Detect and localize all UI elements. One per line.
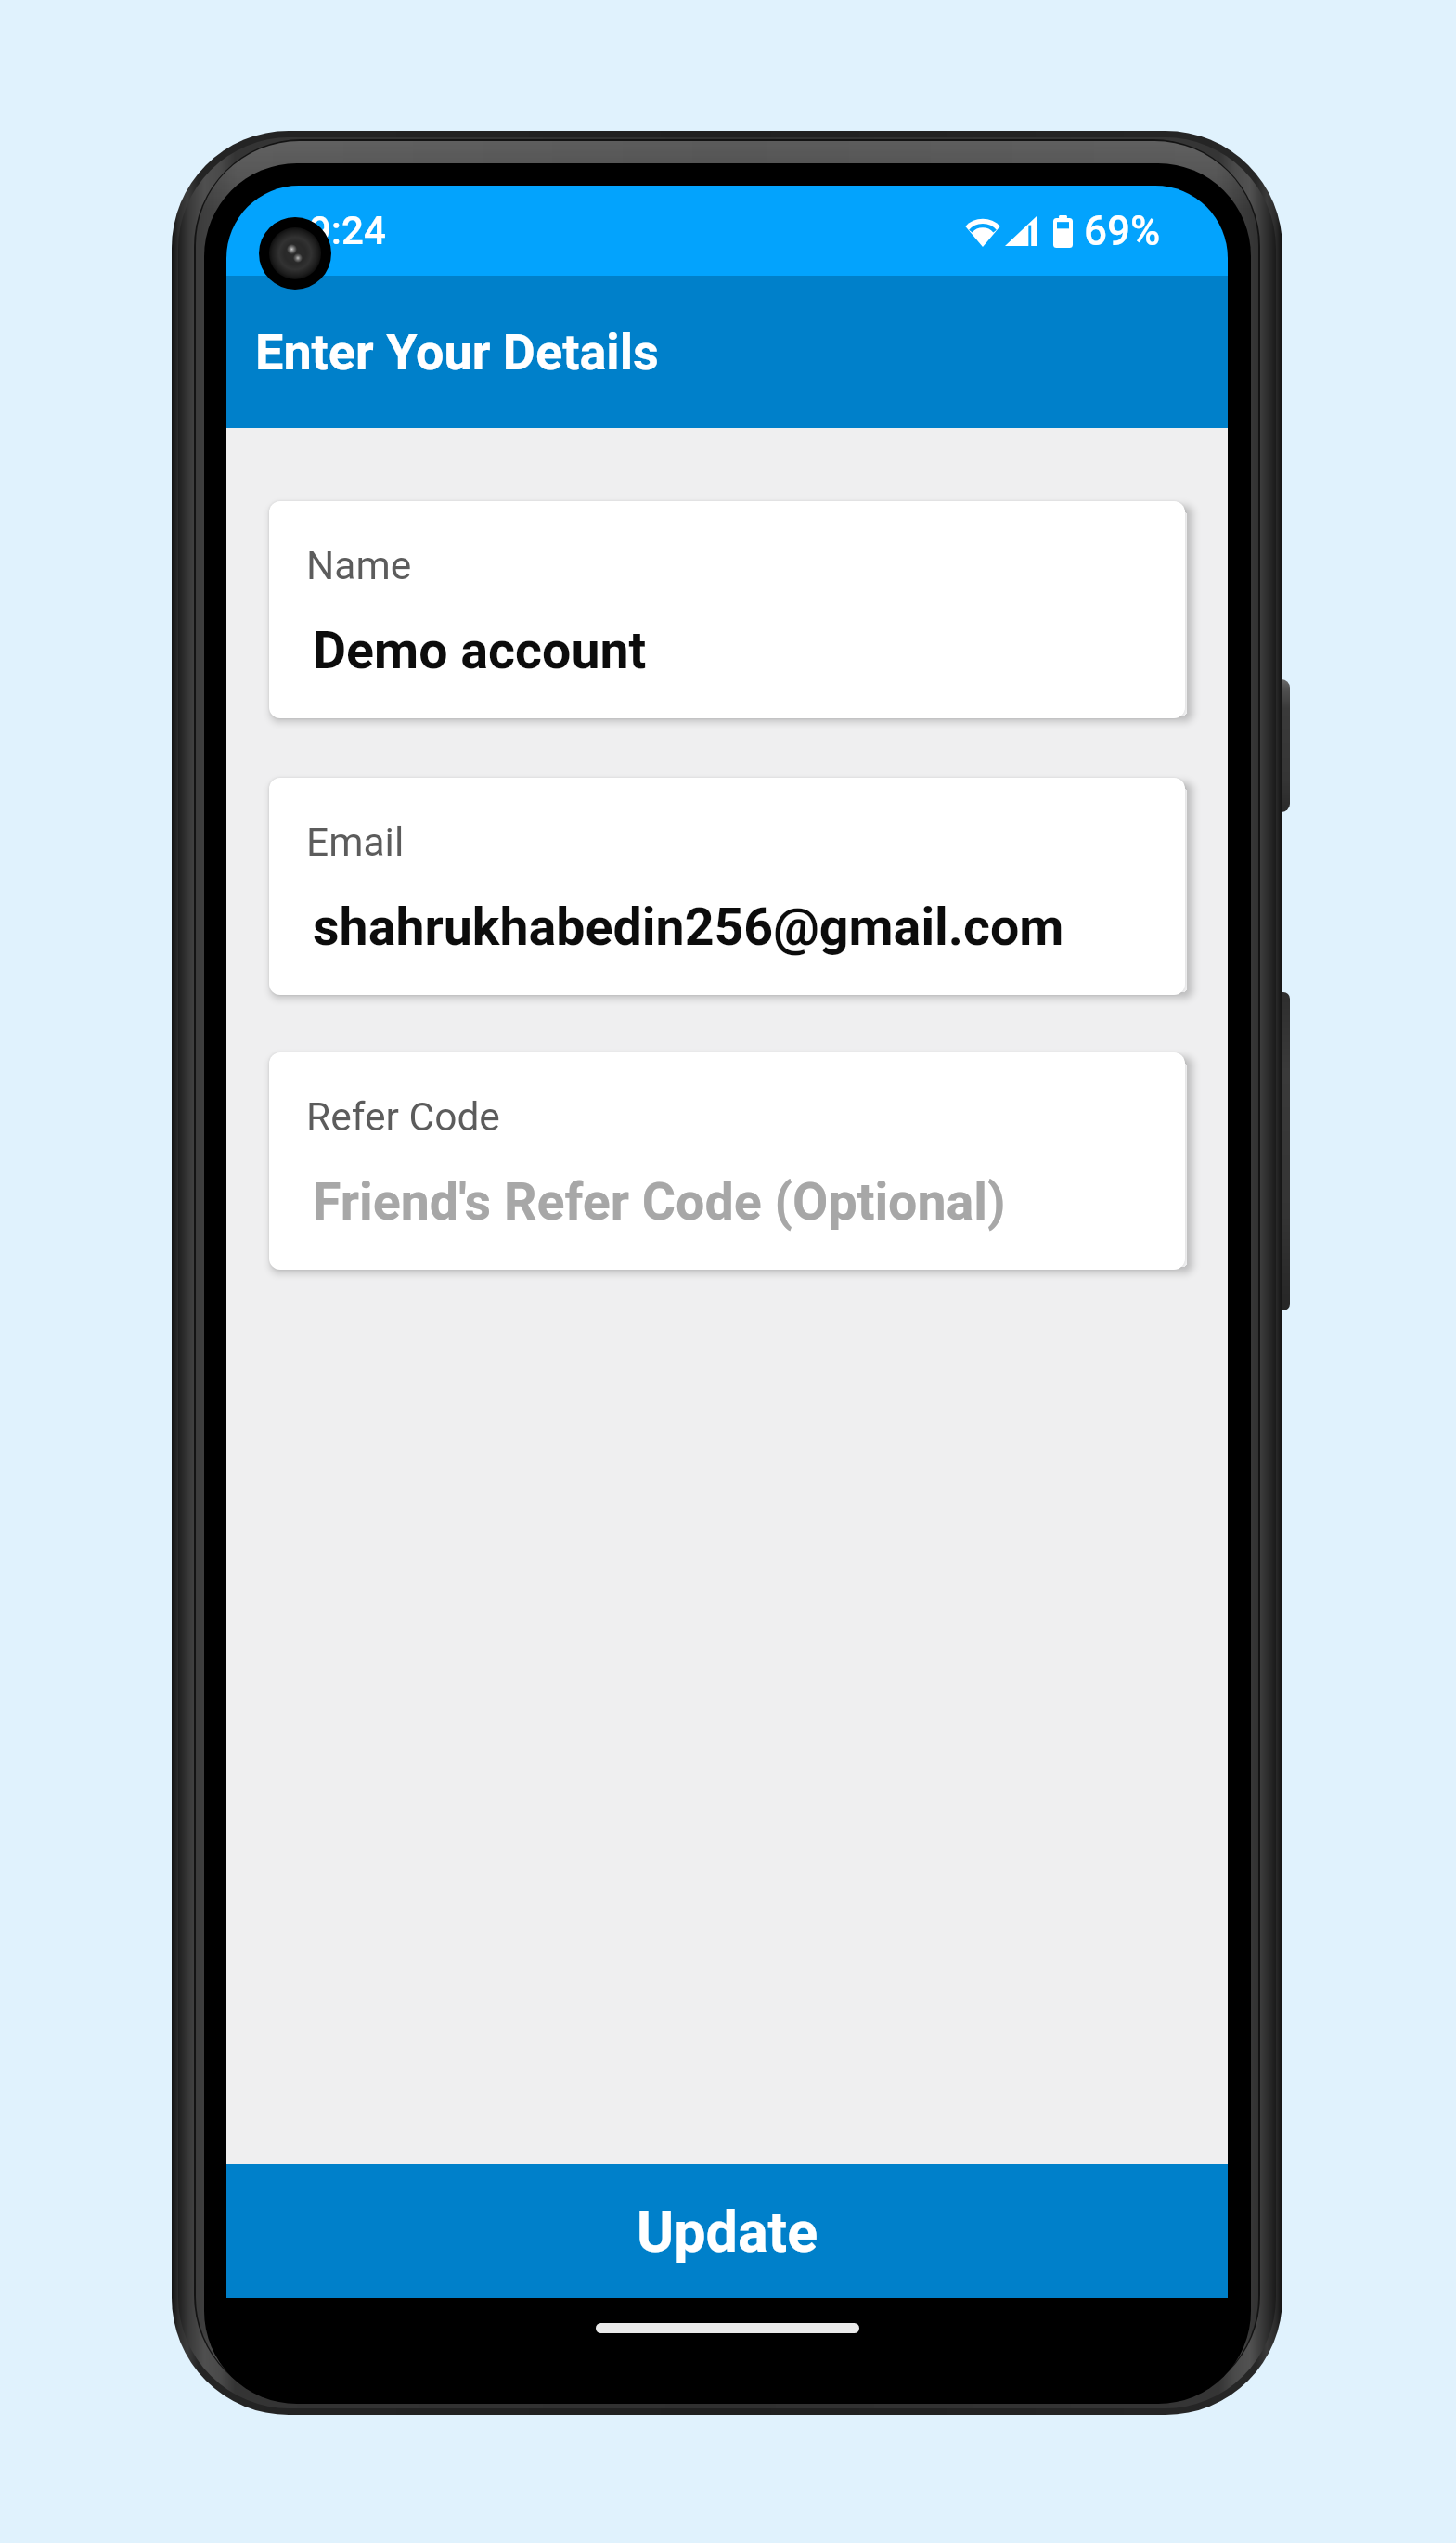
staticText: 69% xyxy=(1084,207,1161,255)
staticText: Friend's Refer Code (Optional) xyxy=(313,1172,1006,1233)
button[interactable]: Name xyxy=(269,501,1185,718)
staticText: Update xyxy=(637,2199,818,2265)
staticText: Demo account xyxy=(313,621,647,681)
button[interactable]: Email xyxy=(269,778,1185,995)
staticText: Refer Code xyxy=(306,1094,500,1141)
staticText: Enter Your Details xyxy=(255,323,659,381)
staticText: shahrukhabedin256@gmail.com xyxy=(313,897,1064,958)
staticText: Name xyxy=(306,543,412,589)
button[interactable]: Power xyxy=(1272,679,1290,812)
button[interactable]: Refer Code xyxy=(269,1052,1185,1270)
staticText: Email xyxy=(306,820,405,866)
button[interactable]: Home xyxy=(596,2323,859,2333)
button[interactable]: Update xyxy=(226,2164,1228,2298)
staticText: 9:24 xyxy=(309,208,386,253)
button[interactable]: Volume xyxy=(1272,992,1290,1310)
